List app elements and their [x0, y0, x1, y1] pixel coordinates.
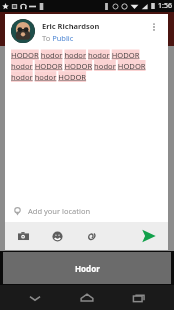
button[interactable]: Recent apps — [122, 285, 156, 310]
staticText: To Public — [42, 33, 74, 43]
button[interactable]: Add photo — [13, 226, 33, 246]
button[interactable]: HODOR hodor hodor hodor HODOR hodor HODO… — [11, 50, 162, 82]
button[interactable]: Attach link — [81, 226, 101, 246]
staticText: 1:56 — [158, 1, 172, 11]
staticText: Eric Richardson — [42, 21, 100, 31]
button[interactable]: Add emoji — [47, 226, 67, 246]
staticText: Hodor — [75, 263, 100, 274]
button[interactable]: Home — [70, 285, 104, 310]
button[interactable]: Send — [138, 225, 160, 247]
button[interactable]: Add your location — [5, 200, 168, 222]
staticText: HODOR hodor hodor hodor HODOR hodor HODO… — [11, 50, 162, 82]
button[interactable]: Hide keyboard — [18, 285, 52, 310]
button[interactable]: Eric Richardson — [11, 19, 162, 43]
button[interactable]: More options — [146, 19, 162, 35]
staticText: Add your location — [28, 206, 91, 216]
button[interactable]: Hodor — [3, 252, 171, 284]
